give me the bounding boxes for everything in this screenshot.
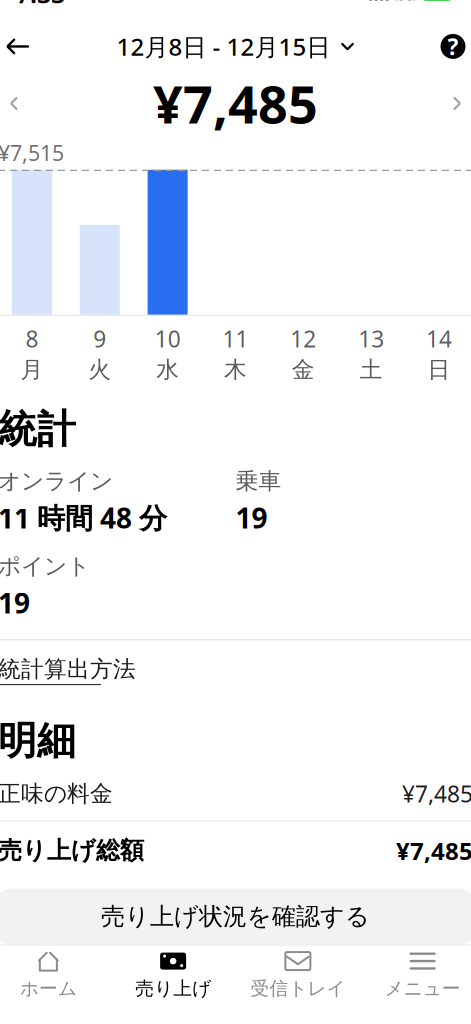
staticText: 統計算出方法 [0, 655, 136, 683]
staticText: 8 [25, 324, 38, 354]
button[interactable]: 売り上げ状況を確認する [0, 889, 471, 945]
button[interactable]: 戻る [0, 24, 40, 68]
staticText: ¥7,485 [153, 69, 318, 138]
staticText: 19 [0, 584, 30, 621]
button[interactable]: 統計算出方法 [0, 649, 136, 691]
button[interactable]: メニュー [360, 946, 471, 1004]
staticText: ? [447, 31, 458, 61]
staticText: 売り上げ状況を確認する [101, 902, 370, 931]
button[interactable]: 受信トレイ [235, 946, 360, 1004]
staticText: 7:33 [16, 0, 65, 10]
staticText: 木 [224, 356, 247, 384]
staticText: 正味の料金 [0, 780, 113, 807]
staticText: 19 [235, 499, 267, 536]
staticText: 日 [428, 356, 451, 384]
button[interactable]: 前の週 [0, 81, 36, 125]
staticText: 乗車 [235, 467, 281, 495]
staticText: 11 [222, 324, 248, 354]
staticText: 土 [360, 356, 383, 384]
staticText: 11 時間 48 分 [0, 499, 167, 536]
button[interactable]: ヘルプ [431, 24, 471, 68]
staticText: 100 [425, 0, 449, 3]
staticText: ホーム [20, 977, 77, 1000]
staticText: 9 [93, 324, 106, 354]
staticText: 売り上げ総額 [0, 836, 144, 865]
button[interactable]: 売り上げ [111, 946, 236, 1004]
staticText: ¥7,515 [0, 138, 64, 167]
staticText: 受信トレイ [250, 977, 345, 1000]
button[interactable]: 12月8日 - 12月15日 [112, 24, 358, 68]
staticText: 明細 [0, 717, 76, 765]
staticText: 金 [292, 356, 315, 384]
staticText: 水 [156, 356, 179, 384]
staticText: ¥7,485 [396, 835, 471, 867]
staticText: 13 [358, 324, 384, 354]
button[interactable]: ホーム [0, 946, 111, 1004]
staticText: 売り上げ [135, 977, 211, 1000]
staticText: 火 [88, 356, 111, 384]
staticText: ¥7,485 [402, 779, 471, 809]
staticText: 月 [20, 356, 43, 384]
button[interactable]: 次の週 [435, 81, 471, 125]
staticText: 10 [155, 324, 181, 354]
staticText: オンライン [0, 467, 113, 495]
staticText: メニュー [385, 977, 461, 1000]
staticText: 14 [426, 324, 452, 354]
staticText: ポイント [0, 552, 90, 580]
staticText: 統計 [0, 406, 76, 453]
staticText: 12月8日 - 12月15日 [116, 30, 330, 62]
staticText: 12 [290, 324, 316, 354]
